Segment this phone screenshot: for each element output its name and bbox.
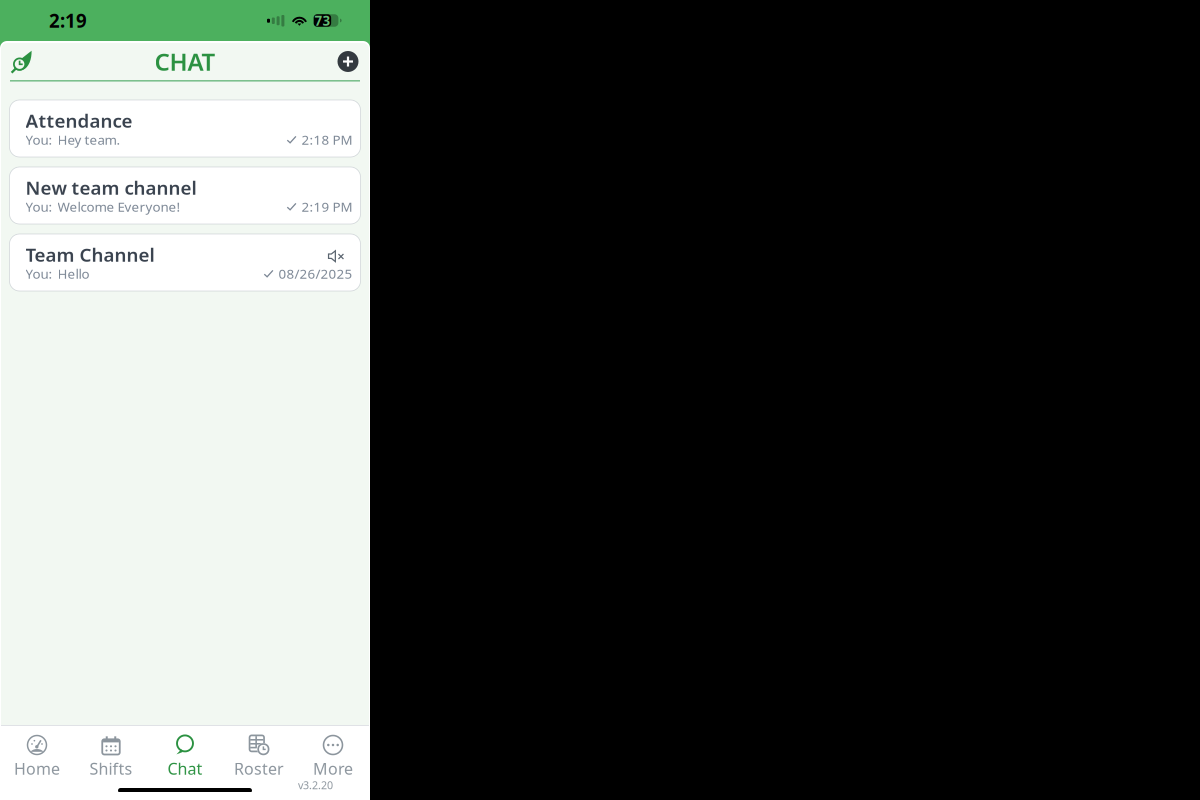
staticText: 73	[314, 12, 330, 29]
staticText: You:	[25, 198, 52, 215]
staticText: Team Channel	[25, 242, 154, 267]
staticText: New team channel	[25, 175, 196, 200]
button[interactable]: Home	[0, 725, 74, 800]
staticText: 2:19	[49, 8, 87, 33]
staticText: Shifts	[89, 758, 132, 779]
staticText: Home	[14, 758, 60, 779]
staticText: Welcome Everyone!	[57, 198, 180, 215]
staticText: More	[313, 758, 353, 779]
button[interactable]: New team channel	[9, 167, 360, 224]
button[interactable]: Team Channel	[9, 234, 360, 291]
button[interactable]: More	[296, 725, 370, 800]
button[interactable]: Chat	[148, 725, 222, 800]
button[interactable]: Attendance	[9, 100, 360, 157]
staticText: 2:18 PM	[301, 131, 352, 148]
staticText: 08/26/2025	[278, 265, 352, 282]
staticText: CHAT	[154, 46, 215, 77]
button[interactable]: Menu	[4, 44, 40, 78]
staticText: You:	[25, 265, 52, 282]
button[interactable]: Shifts	[74, 725, 148, 800]
button[interactable]: New chat	[330, 44, 366, 78]
staticText: Chat	[167, 758, 202, 779]
staticText: Attendance	[25, 108, 132, 133]
staticText: You:	[25, 131, 52, 148]
staticText: Hey team.	[57, 131, 120, 148]
button[interactable]: Roster	[222, 725, 296, 800]
staticText: Hello	[57, 265, 89, 282]
staticText: v3.2.20	[298, 778, 333, 792]
staticText: 2:19 PM	[301, 198, 352, 215]
staticText: Roster	[234, 758, 284, 779]
